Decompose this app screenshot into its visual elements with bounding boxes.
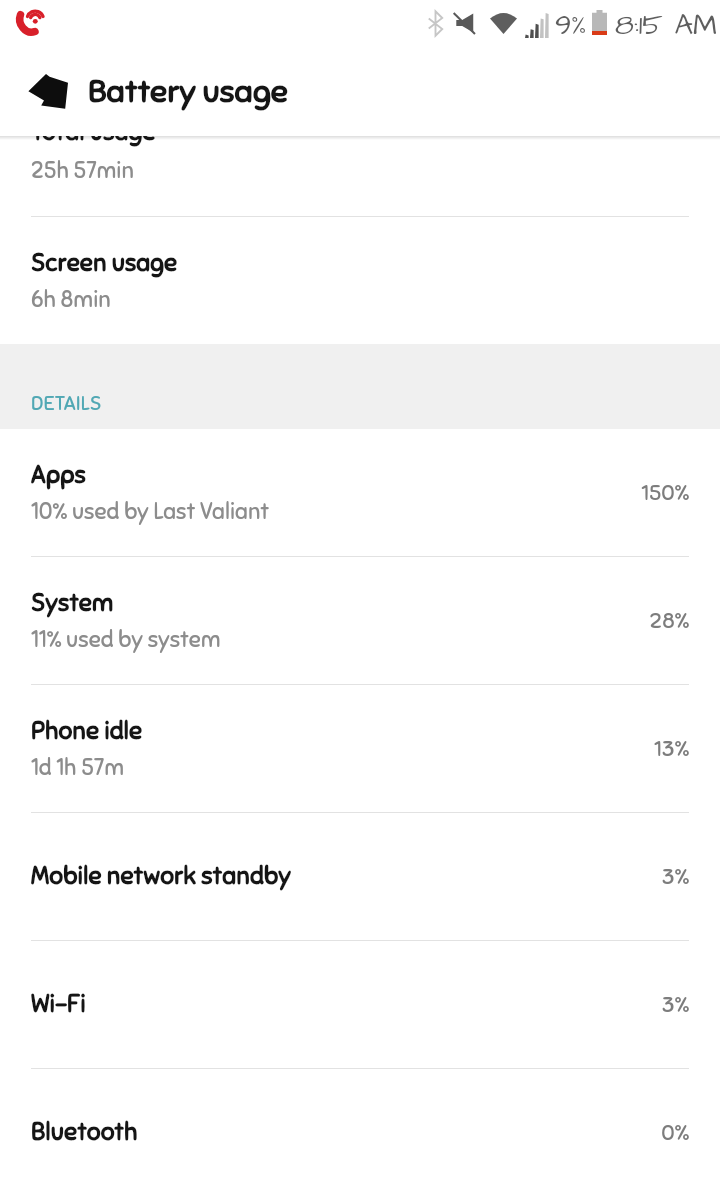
staticText: System — [31, 588, 114, 619]
button[interactable]: System — [0, 557, 720, 684]
button[interactable]: Screen usage — [0, 217, 720, 344]
staticText: Mobile network standby — [31, 861, 291, 892]
staticText: Screen usage — [31, 248, 178, 279]
staticText: 10% used by Last Valiant — [31, 497, 270, 525]
staticText: Bluetooth — [31, 1117, 138, 1148]
staticText: 6h 8min — [31, 285, 111, 313]
staticText: Apps — [31, 460, 86, 491]
button[interactable]: Apps — [0, 429, 720, 556]
staticText: 9% — [555, 5, 587, 45]
staticText: Battery usage — [88, 71, 288, 111]
staticText: 25h 57min — [31, 156, 134, 184]
staticText: DETAILS — [31, 391, 102, 416]
staticText: 8:15 AM — [615, 5, 718, 45]
button[interactable]: Navigate up — [9, 46, 87, 136]
staticText: Phone idle — [31, 716, 143, 747]
staticText: 11% used by system — [31, 625, 221, 653]
button[interactable]: Mobile network standby — [0, 813, 720, 940]
staticText: Total usage — [31, 136, 156, 148]
staticText: 0% — [661, 1119, 689, 1146]
staticText: 150% — [641, 479, 689, 506]
staticText: 13% — [654, 735, 689, 762]
staticText: 3% — [661, 863, 689, 890]
staticText: 3% — [661, 991, 689, 1018]
button[interactable]: Phone idle — [0, 685, 720, 812]
button[interactable]: Wi-Fi — [0, 941, 720, 1068]
staticText: 28% — [649, 607, 689, 634]
staticText: Wi-Fi — [31, 989, 86, 1020]
button[interactable]: Bluetooth — [0, 1069, 720, 1196]
staticText: 1d 1h 57m — [31, 753, 125, 781]
